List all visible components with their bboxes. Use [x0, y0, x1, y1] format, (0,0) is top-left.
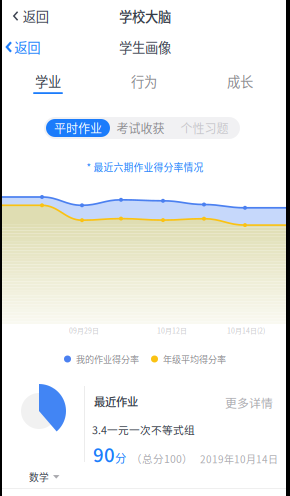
staticText: 90 — [93, 440, 115, 467]
button[interactable]: 返回 — [0, 5, 57, 27]
button[interactable]: 更多详情 — [222, 391, 276, 414]
button[interactable]: 个性习题 — [171, 119, 238, 137]
staticText: 行为 — [131, 71, 157, 91]
staticText: 分 — [115, 450, 126, 466]
staticText: 10月12日 — [157, 325, 187, 335]
button[interactable]: 成长 — [192, 74, 288, 94]
staticText: 返回 — [14, 37, 40, 57]
staticText: 返回 — [23, 6, 49, 26]
button[interactable]: 返回 — [0, 36, 48, 58]
staticText: 学校大脑 — [119, 6, 171, 26]
staticText: 3.4一元一次不等式组 — [92, 422, 195, 437]
staticText: 2019年10月14日 — [200, 451, 278, 466]
staticText: 数学 — [29, 470, 49, 484]
staticText: 成长 — [227, 71, 253, 91]
staticText: 年级平均得分率 — [163, 352, 226, 365]
button[interactable]: 考试收获 — [110, 119, 171, 137]
staticText: * 最近六期作业得分率情况 — [86, 160, 203, 174]
button[interactable]: 数学 — [25, 466, 64, 488]
staticText: 学业 — [35, 71, 61, 91]
staticText: 个性习题 — [180, 119, 228, 137]
button[interactable]: 行为 — [96, 74, 192, 94]
staticText: 学生画像 — [119, 37, 171, 57]
staticText: （总分100） — [131, 451, 193, 466]
staticText: 考试收获 — [116, 119, 164, 137]
staticText: 更多详情 — [225, 394, 273, 411]
staticText: 平时作业 — [54, 119, 102, 137]
button[interactable]: 平时作业 — [46, 119, 110, 137]
staticText: 最近作业 — [94, 393, 138, 409]
staticText: 我的作业得分率 — [76, 352, 139, 365]
staticText: 09月29日 — [69, 325, 99, 335]
staticText: 10月14日(2) — [227, 325, 265, 335]
button[interactable]: 学业 — [0, 74, 96, 94]
